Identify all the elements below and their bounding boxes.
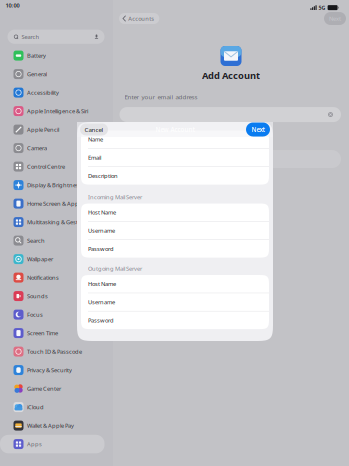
button[interactable]: Accounts <box>119 13 159 24</box>
staticText: Accessibility <box>27 89 59 96</box>
button[interactable]: Battery <box>0 46 104 65</box>
staticText: Host Name <box>88 208 116 216</box>
button[interactable]: Privacy & Security <box>0 361 104 379</box>
staticText: Next <box>251 125 264 134</box>
staticText: General <box>27 70 47 78</box>
staticText: Notifications <box>27 274 59 281</box>
staticText: Privacy & Security <box>27 366 72 374</box>
button[interactable]: Cancel <box>80 123 108 135</box>
staticText: Username <box>88 227 115 234</box>
button[interactable]: Wallet & Apple Pay <box>0 416 104 435</box>
staticText: Wallet & Apple Pay <box>27 422 74 429</box>
staticText: Add Account <box>202 69 260 82</box>
staticText: Cancel <box>84 125 103 134</box>
button[interactable]: Camera <box>0 139 104 157</box>
staticText: Next <box>329 15 341 22</box>
staticText: Description <box>88 172 118 180</box>
staticText: Search <box>27 237 45 244</box>
staticText: Apple Pencil <box>27 126 59 133</box>
staticText: Password <box>88 316 114 324</box>
staticText: Battery <box>27 52 46 59</box>
staticText: Password <box>88 245 114 253</box>
button[interactable]: Apple Pencil <box>0 120 104 139</box>
staticText: New Account <box>155 125 194 134</box>
staticText: Search <box>21 33 39 41</box>
button[interactable]: Touch ID & Passcode <box>0 342 104 361</box>
button[interactable]: Focus <box>0 305 104 324</box>
button[interactable]: Notifications <box>0 268 104 287</box>
staticText: iCloud <box>27 403 44 411</box>
button[interactable]: General <box>0 65 104 83</box>
staticText: Apps <box>27 440 42 448</box>
button[interactable]: iCloud <box>0 398 104 416</box>
button[interactable]: Screen Time <box>0 324 104 342</box>
staticText: Enter your email address <box>124 93 197 101</box>
staticText: Home Screen & App Library <box>27 200 97 207</box>
staticText: Email <box>88 154 101 161</box>
staticText: Multitasking & Gestures <box>27 218 90 226</box>
staticText: Screen Time <box>27 329 58 337</box>
button[interactable]: Wallpaper <box>0 250 104 268</box>
button[interactable]: Display & Brightness <box>0 176 104 194</box>
staticText: 10:00 <box>5 1 19 9</box>
staticText: Display & Brightness <box>27 181 82 189</box>
button[interactable]: Next <box>246 122 270 136</box>
button[interactable]: Home Screen & App Library <box>0 194 104 213</box>
button[interactable]: Multitasking & Gestures <box>0 213 104 231</box>
staticText: Sounds <box>27 292 48 300</box>
staticText: Name <box>88 135 103 143</box>
button[interactable]: Apple Intelligence & Siri <box>0 102 104 120</box>
button[interactable]: Next <box>324 12 346 25</box>
staticText: 5G <box>319 4 326 11</box>
button[interactable]: Search <box>0 231 104 250</box>
staticText: Camera <box>27 144 47 152</box>
staticText: Username <box>88 298 115 306</box>
staticText: Wallpaper <box>27 255 53 263</box>
staticText: Touch ID & Passcode <box>27 348 82 355</box>
staticText: Apple Intelligence & Siri <box>27 107 88 115</box>
staticText: Game Center <box>27 385 61 392</box>
button[interactable]: Control Centre <box>0 157 104 176</box>
button[interactable]: Game Center <box>0 379 104 398</box>
button[interactable]: Apps <box>0 435 104 453</box>
button[interactable]: Sounds <box>0 287 104 305</box>
button[interactable]: Accessibility <box>0 83 104 102</box>
staticText: Focus <box>27 311 43 318</box>
staticText: Outgoing Mail Server <box>88 265 142 272</box>
staticText: Accounts <box>128 15 154 22</box>
staticText: Control Centre <box>27 163 65 170</box>
staticText: Incoming Mail Server <box>88 193 142 201</box>
staticText: Host Name <box>88 280 116 288</box>
